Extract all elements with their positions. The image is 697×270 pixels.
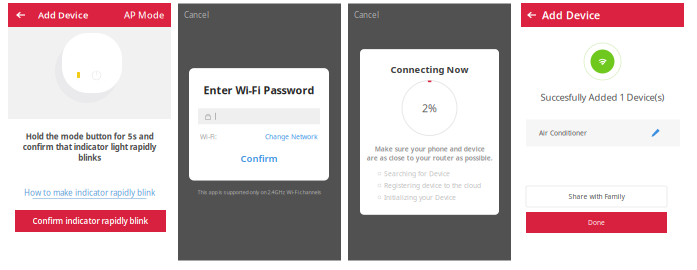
staticText: Change Network (265, 132, 318, 141)
staticText: 2% (422, 101, 437, 115)
staticText: Make sure your phone and device are as c… (366, 144, 492, 162)
staticText: Add Device (38, 9, 88, 21)
staticText: Searching for Device (384, 169, 450, 178)
staticText: This app is supported only on 2.4GHz Wi-… (197, 188, 321, 196)
staticText: Confirm indicator rapidly blink (32, 216, 148, 226)
staticText: Cancel (354, 9, 379, 20)
staticText: Share with Family (568, 192, 624, 201)
button[interactable]: Confirm indicator rapidly blink (15, 210, 166, 232)
button[interactable]: How to make indicator rapidly blink (24, 187, 155, 199)
button[interactable]: Rename device (651, 128, 660, 137)
button[interactable]: AP Mode (124, 3, 171, 27)
staticText: Enter Wi-Fi Password (203, 83, 314, 97)
staticText: AP Mode (124, 9, 164, 21)
button[interactable]: Done (526, 212, 667, 233)
staticText: Hold the mode button for 5s and confirm … (22, 131, 156, 163)
staticText: Wi-Fi: (200, 132, 217, 141)
staticText: Confirm (240, 152, 277, 164)
button[interactable]: Cancel (178, 3, 209, 20)
staticText: Done (588, 218, 605, 227)
staticText: Succesfully Added 1 Device(s) (540, 91, 664, 103)
button[interactable]: Back (8, 3, 38, 27)
staticText: How to make indicator rapidly blink (24, 187, 155, 198)
button[interactable]: Share with Family (526, 186, 667, 207)
staticText: Initializing your Device (384, 193, 456, 202)
staticText: Cancel (184, 9, 209, 20)
staticText: Add Device (542, 8, 600, 22)
button[interactable]: Back (521, 3, 542, 27)
staticText: Air Conditioner (539, 128, 587, 137)
button[interactable]: Change Network (265, 132, 318, 141)
staticText: Registering device to the cloud (384, 181, 481, 190)
button[interactable]: Confirm (189, 152, 329, 164)
button[interactable]: Cancel (348, 3, 379, 20)
staticText: Connecting Now (390, 63, 468, 75)
